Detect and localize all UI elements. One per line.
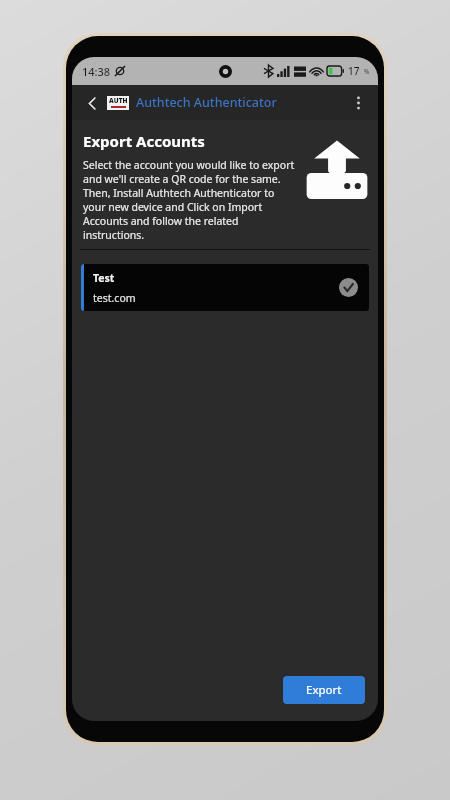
button[interactable]: More options <box>345 90 371 116</box>
staticText: test.com <box>93 291 136 305</box>
staticText: Export <box>306 682 342 698</box>
staticText: Test <box>93 271 115 285</box>
button[interactable]: Test <box>81 264 369 311</box>
staticText: Select the account you would like to exp… <box>83 158 296 242</box>
button[interactable]: Back <box>79 90 105 116</box>
staticText: Export Accounts <box>83 131 205 151</box>
staticText: 17 <box>348 64 360 78</box>
button[interactable]: Selected <box>339 278 358 297</box>
staticText: Authtech Authenticator <box>136 94 277 111</box>
staticText: 14:38 <box>82 64 111 79</box>
button[interactable]: Export <box>283 676 365 704</box>
staticText: AUTH <box>109 96 128 105</box>
staticText: % <box>364 67 370 76</box>
